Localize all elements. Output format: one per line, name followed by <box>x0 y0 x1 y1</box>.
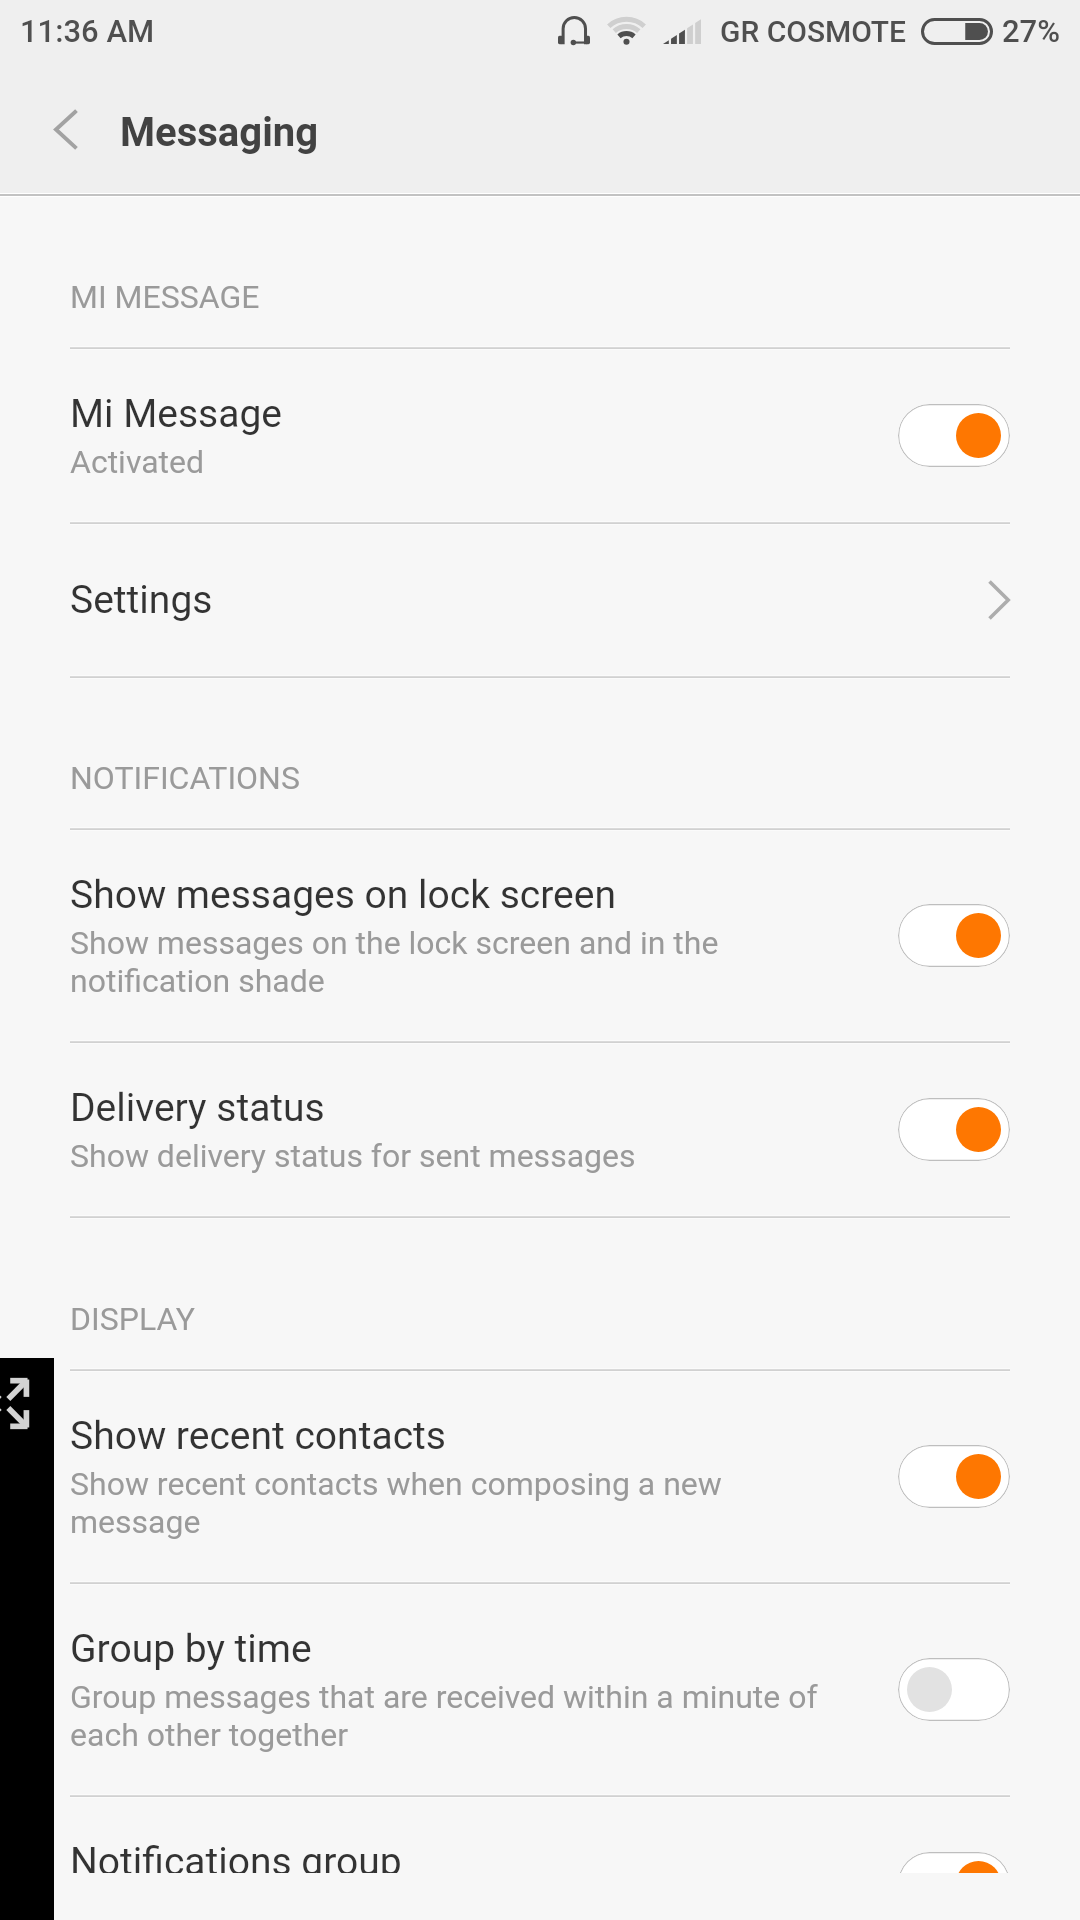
staticText: MI MESSAGE <box>70 278 260 316</box>
staticText: Notifications group <box>70 1839 402 1873</box>
button[interactable]: Switch off <box>898 1658 1010 1721</box>
button[interactable]: Switch on <box>898 904 1010 967</box>
button[interactable]: Show messages on lock screen <box>0 830 1080 1041</box>
button[interactable]: Group by time <box>0 1584 1080 1795</box>
button[interactable]: Show recent contacts <box>0 1371 1080 1582</box>
staticText: GR COSMOTE <box>720 14 906 49</box>
button[interactable]: Delivery status <box>0 1043 1080 1216</box>
staticText: Settings <box>70 577 213 623</box>
staticText: 11:36 AM <box>20 13 155 49</box>
button[interactable]: Mi Message <box>0 349 1080 522</box>
button[interactable]: Switch on <box>898 404 1010 467</box>
button[interactable]: Switch on <box>898 1098 1010 1161</box>
staticText: NOTIFICATIONS <box>70 759 300 797</box>
button[interactable]: Switch on <box>898 1445 1010 1508</box>
staticText: Show messages on the lock screen and in … <box>70 924 719 1000</box>
button[interactable]: Expand recorder <box>0 1358 54 1920</box>
button[interactable]: Switch on <box>898 1852 1010 1873</box>
button[interactable]: Back <box>20 84 110 174</box>
button[interactable]: Settings <box>0 524 1080 676</box>
staticText: Show recent contacts <box>70 1413 446 1459</box>
staticText: 27% <box>1002 13 1061 49</box>
staticText: Show recent contacts when composing a ne… <box>70 1465 722 1541</box>
staticText: Messaging <box>120 109 318 156</box>
staticText: Group by time <box>70 1626 312 1672</box>
staticText: Activated <box>70 443 205 481</box>
staticText: Show messages on lock screen <box>70 872 616 918</box>
staticText: Delivery status <box>70 1085 325 1131</box>
staticText: Mi Message <box>70 391 282 437</box>
button[interactable]: Notifications group <box>0 1797 1080 1873</box>
staticText: Group messages that are received within … <box>70 1678 818 1754</box>
staticText: DISPLAY <box>70 1300 196 1338</box>
staticText: Show delivery status for sent messages <box>70 1137 636 1175</box>
